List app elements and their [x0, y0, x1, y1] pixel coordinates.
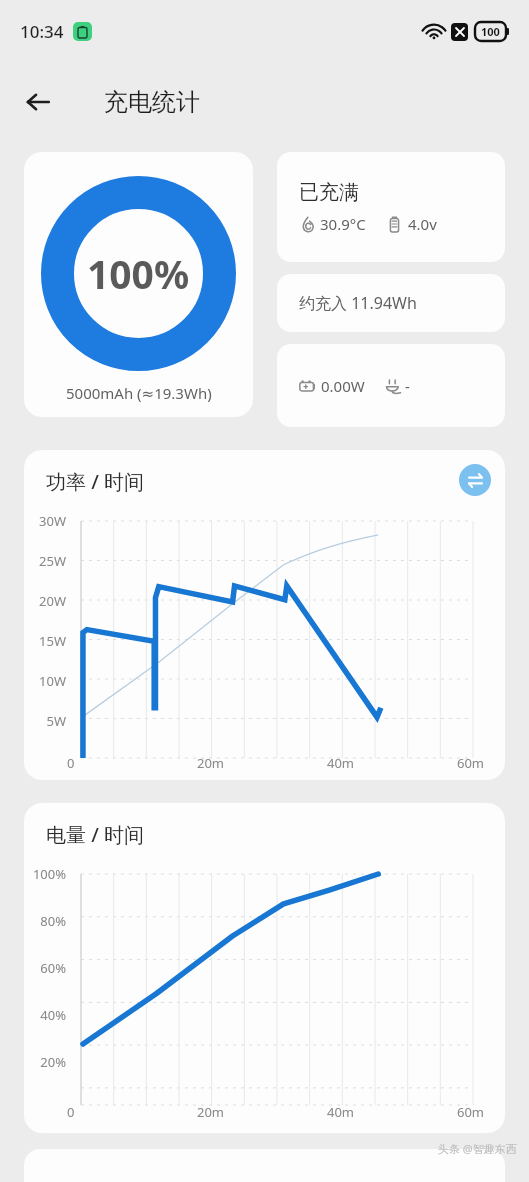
staticText: 电量 / 时间 — [46, 821, 145, 848]
staticText: 60m — [457, 1103, 485, 1121]
staticText: 20W — [24, 592, 66, 610]
button[interactable]: Back — [14, 78, 62, 126]
button[interactable]: 电量 / 时间 — [24, 803, 505, 1133]
staticText: 充电统计 — [104, 87, 200, 117]
button[interactable]: 约充入 11.94Wh — [277, 274, 505, 332]
button[interactable]: 100% — [24, 152, 253, 417]
staticText: 40m — [327, 754, 355, 772]
staticText: 已充满 — [299, 180, 359, 205]
staticText: 0 — [67, 1103, 75, 1121]
staticText: 20m — [197, 754, 225, 772]
button[interactable]: Switch chart — [459, 464, 491, 496]
staticText: 30W — [24, 512, 66, 530]
staticText: 40m — [327, 1103, 355, 1121]
staticText: 5W — [24, 712, 66, 730]
staticText: 20m — [197, 1103, 225, 1121]
button[interactable]: 0.00W — [277, 344, 505, 427]
staticText: 20% — [24, 1053, 66, 1071]
staticText: 0 — [67, 754, 75, 772]
staticText: 15W — [24, 632, 66, 650]
staticText: 0.00W — [321, 376, 365, 396]
button[interactable]: 已充满 — [277, 152, 505, 262]
staticText: 100% — [24, 865, 66, 883]
staticText: 30.9°C — [320, 214, 366, 234]
staticText: 100% — [87, 247, 190, 300]
staticText: 10W — [24, 672, 66, 690]
staticText: 100 — [481, 24, 500, 39]
staticText: 功率 / 时间 — [46, 468, 145, 495]
staticText: 40% — [24, 1006, 66, 1024]
staticText: 头条 @智趣东西 — [438, 1141, 517, 1156]
staticText: - — [405, 376, 410, 396]
staticText: 约充入 11.94Wh — [299, 292, 417, 314]
staticText: 60% — [24, 959, 66, 977]
button[interactable]: 功率 / 时间 — [24, 450, 505, 780]
staticText: 80% — [24, 912, 66, 930]
staticText: 60m — [457, 754, 485, 772]
staticText: 4.0v — [408, 214, 437, 234]
staticText: 10:34 — [20, 20, 64, 43]
staticText: 25W — [24, 552, 66, 570]
staticText: 5000mAh (≈19.3Wh) — [66, 383, 212, 403]
